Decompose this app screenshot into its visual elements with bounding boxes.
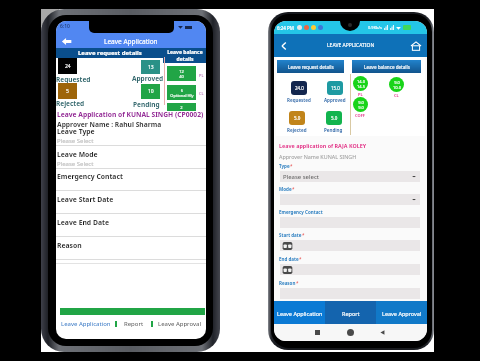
staticText: 5.0 <box>294 115 301 121</box>
staticText: Leave Type <box>57 127 95 136</box>
staticText: 6:10 <box>60 23 70 30</box>
staticText: 9.0 9.0 <box>358 100 364 110</box>
button[interactable]: Report <box>117 317 151 330</box>
button[interactable] <box>280 240 420 251</box>
button[interactable]: Emergency Contact <box>56 172 206 194</box>
staticText: 24.0 <box>295 85 304 91</box>
staticText: 5 <box>66 88 69 95</box>
staticText: Please Select <box>57 137 94 145</box>
staticText: End date <box>279 256 299 262</box>
staticText: Reason <box>57 241 82 250</box>
button[interactable]: Leave Mode <box>56 150 206 172</box>
staticText: 13 <box>148 64 154 71</box>
staticText: Rejected <box>56 99 85 108</box>
staticText: Leave request details <box>288 64 334 70</box>
button[interactable] <box>280 194 420 205</box>
button[interactable]: Home <box>347 329 354 336</box>
button[interactable]: Leave Application <box>56 317 115 330</box>
staticText: 12 40 <box>179 69 184 79</box>
staticText: Type <box>279 163 290 169</box>
staticText: Leave Application <box>61 320 111 328</box>
staticText: * <box>292 186 295 192</box>
staticText: Leave Application <box>277 310 323 317</box>
staticText: * <box>296 280 299 286</box>
staticText: Emergency Contact <box>279 209 323 215</box>
button[interactable]: Leave Approval <box>153 317 206 330</box>
staticText: Rejected <box>287 127 307 133</box>
staticText: 6 Optional Hly <box>170 88 194 98</box>
button[interactable]: Home <box>410 40 422 52</box>
staticText: 9.0 10.0 <box>393 80 401 90</box>
staticText: Leave Mode <box>57 150 98 159</box>
staticText: COFF <box>355 113 366 118</box>
staticText: Start date <box>279 232 302 238</box>
staticText: * <box>302 232 305 238</box>
staticText: CL <box>199 91 204 96</box>
staticText: Reason <box>279 280 296 286</box>
staticText: Report <box>342 310 360 317</box>
staticText: Leave Start Date <box>57 195 114 204</box>
staticText: Pending <box>324 127 343 133</box>
staticText: Leave Application of KUNAL SINGH (CP0002… <box>57 110 204 119</box>
staticText: CL <box>394 93 399 98</box>
staticText: Please select <box>283 173 319 181</box>
staticText: Pending <box>133 100 160 109</box>
button[interactable]: Leave Type <box>56 127 206 149</box>
staticText: Leave End Date <box>57 218 109 227</box>
staticText: Approved <box>132 74 164 83</box>
staticText: Requested <box>287 97 311 103</box>
button[interactable]: Please select <box>280 171 420 182</box>
button[interactable]: Leave Start Date <box>56 195 206 217</box>
button[interactable]: Back <box>61 36 72 47</box>
button[interactable]: Leave Approval <box>376 301 427 325</box>
staticText: Report <box>124 320 144 328</box>
staticText: * <box>290 163 293 169</box>
button[interactable] <box>280 264 420 275</box>
button[interactable]: Back <box>279 41 289 51</box>
staticText: Leave Approval <box>158 320 201 328</box>
staticText: PL <box>358 92 363 97</box>
staticText: 5.0 <box>331 115 338 121</box>
staticText: 24 <box>65 63 71 70</box>
button[interactable]: Leave Application <box>274 301 325 325</box>
staticText: Leave request details <box>78 49 142 57</box>
button[interactable]: Back <box>379 329 386 336</box>
staticText: LEAVE APPLICATION <box>327 42 375 49</box>
staticText: Leave balance details <box>167 49 203 62</box>
staticText: 2 <box>180 105 183 110</box>
button[interactable]: Leave End Date <box>56 218 206 240</box>
staticText: Leave balance details <box>364 64 410 70</box>
staticText: Requested <box>56 75 91 84</box>
staticText: Approver Name KUNAL SINGH <box>279 153 357 160</box>
staticText: Please Select <box>57 160 94 168</box>
staticText: Approved <box>324 97 346 103</box>
staticText: Emergency Contact <box>57 172 123 181</box>
staticText: 14.0 14.5 <box>357 79 365 89</box>
staticText: Leave Application <box>104 37 158 46</box>
staticText: 0.9Kb/s <box>368 25 382 30</box>
staticText: 10 <box>148 88 154 95</box>
staticText: 15.0 <box>331 85 340 91</box>
button[interactable]: Reason <box>56 241 206 263</box>
staticText: Approver Name : Rahul Sharma <box>57 120 162 129</box>
staticText: 6:24 PM <box>277 25 294 31</box>
button[interactable]: Report <box>325 301 376 325</box>
staticText: Leave Approval <box>382 310 422 317</box>
staticText: Leave application of RAJA KOLEY <box>279 142 367 149</box>
staticText: * <box>299 256 302 262</box>
staticText: Mode <box>279 186 292 192</box>
staticText: PL <box>199 73 204 78</box>
